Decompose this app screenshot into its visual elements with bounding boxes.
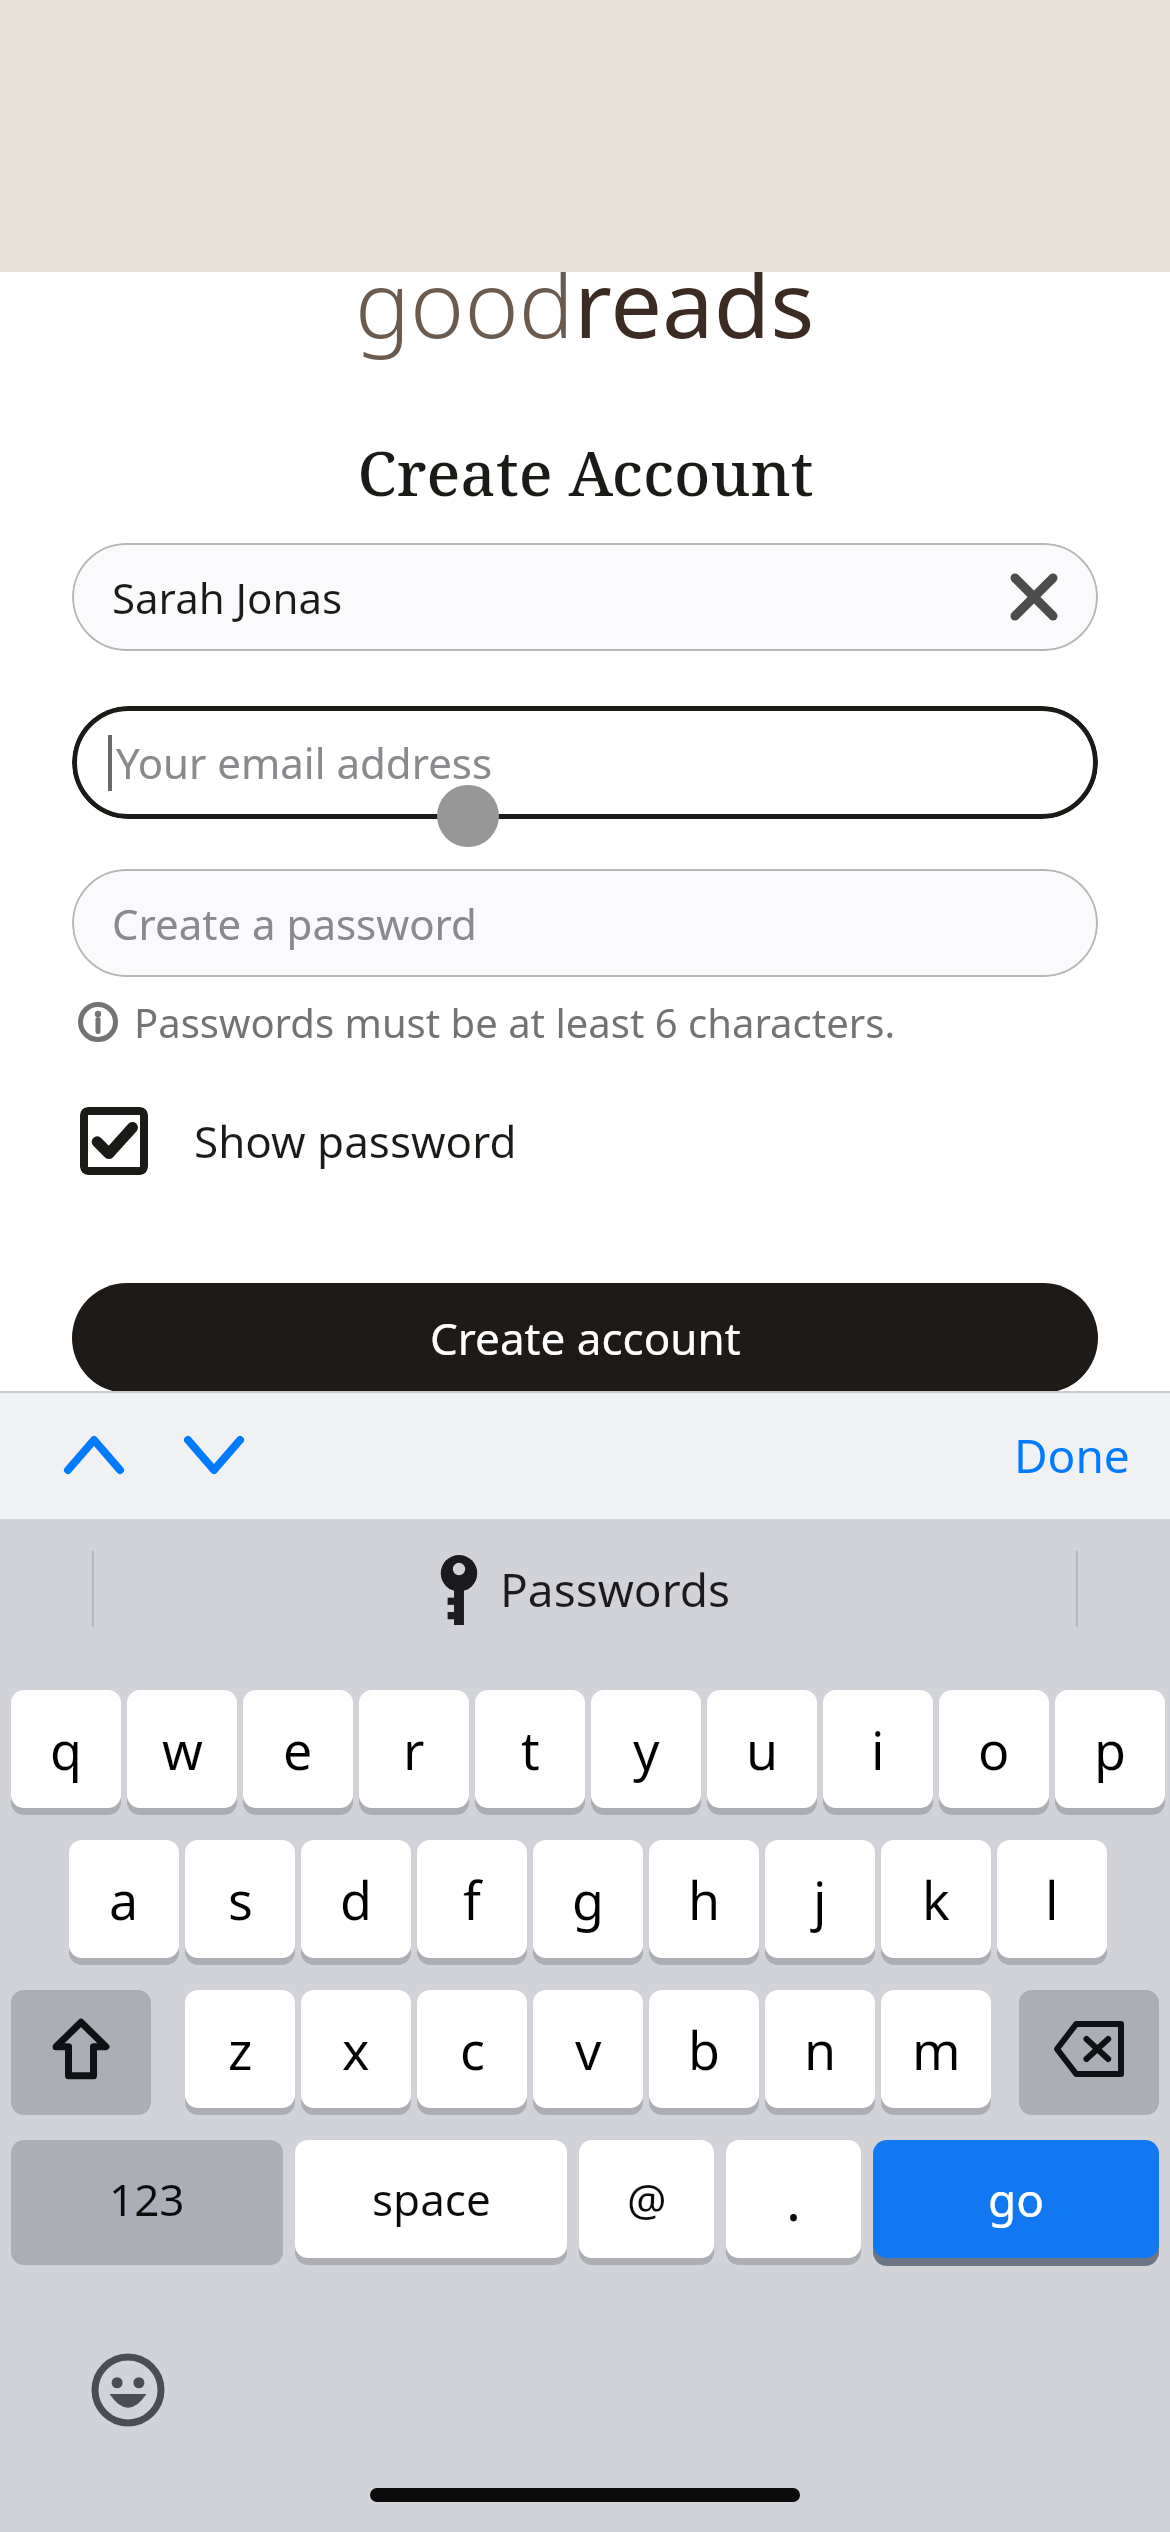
staticText: u xyxy=(746,1714,779,1785)
staticText: k xyxy=(922,1864,950,1935)
button[interactable]: q xyxy=(11,1690,121,1808)
button[interactable]: b xyxy=(649,1990,759,2108)
staticText: r xyxy=(403,1714,425,1785)
staticText: Your email address xyxy=(116,734,493,791)
button[interactable]: y xyxy=(591,1690,701,1808)
button[interactable]: j xyxy=(765,1840,875,1958)
staticText: w xyxy=(162,1714,203,1785)
staticText: good xyxy=(355,240,574,365)
button[interactable]: Show password xyxy=(68,1095,529,1187)
staticText: Create account xyxy=(430,1308,741,1368)
staticText: n xyxy=(804,2014,837,2085)
button[interactable]: go xyxy=(873,2140,1159,2258)
staticText: f xyxy=(463,1864,481,1935)
button[interactable]: z xyxy=(185,1990,295,2108)
button[interactable]: v xyxy=(533,1990,643,2108)
staticText: 123 xyxy=(109,2169,185,2229)
button[interactable]: p xyxy=(1055,1690,1165,1808)
button[interactable]: l xyxy=(997,1840,1107,1958)
button[interactable]: Previous field xyxy=(46,1407,142,1503)
button[interactable]: Backspace xyxy=(1019,1990,1159,2108)
staticText: x xyxy=(342,2014,370,2085)
staticText: m xyxy=(912,2014,961,2085)
staticText: e xyxy=(283,1714,313,1785)
button[interactable]: Passwords xyxy=(440,1553,731,1625)
button[interactable]: s xyxy=(185,1840,295,1958)
button[interactable]: u xyxy=(707,1690,817,1808)
staticText: j xyxy=(813,1864,827,1935)
staticText: Passwords must be at least 6 characters. xyxy=(134,995,896,1049)
staticText: Create Account xyxy=(357,430,814,514)
staticText: y xyxy=(633,1714,660,1785)
staticText: reads xyxy=(574,240,815,365)
staticText: c xyxy=(460,2014,485,2085)
staticText: Sarah Jonas xyxy=(112,569,343,626)
button[interactable]: w xyxy=(127,1690,237,1808)
button[interactable]: h xyxy=(649,1840,759,1958)
staticText: @ xyxy=(627,2169,667,2229)
staticText: d xyxy=(340,1864,372,1935)
button[interactable]: e xyxy=(243,1690,353,1808)
button[interactable]: space xyxy=(295,2140,567,2258)
button[interactable]: Clear text xyxy=(1004,567,1064,627)
button[interactable]: Shift xyxy=(11,1990,151,2108)
button[interactable]: t xyxy=(475,1690,585,1808)
button[interactable]: g xyxy=(533,1840,643,1958)
staticText: q xyxy=(50,1714,82,1785)
staticText: p xyxy=(1094,1714,1126,1785)
button[interactable]: a xyxy=(69,1840,179,1958)
button[interactable]: r xyxy=(359,1690,469,1808)
button[interactable]: n xyxy=(765,1990,875,2108)
button[interactable]: Done xyxy=(974,1407,1170,1503)
button[interactable]: m xyxy=(881,1990,991,2108)
button[interactable]: 123 xyxy=(11,2140,283,2258)
staticText: Show password xyxy=(194,1111,517,1171)
staticText: v xyxy=(575,2014,602,2085)
button[interactable]: i xyxy=(823,1690,933,1808)
staticText: o xyxy=(978,1714,1010,1785)
staticText: g xyxy=(572,1864,604,1935)
button[interactable]: f xyxy=(417,1840,527,1958)
staticText: Create a password xyxy=(112,895,477,952)
staticText: b xyxy=(688,2014,720,2085)
staticText: go xyxy=(988,2168,1045,2231)
staticText: Passwords xyxy=(500,1558,731,1621)
staticText: l xyxy=(1045,1864,1059,1935)
button[interactable]: Next field xyxy=(166,1407,262,1503)
button[interactable]: . xyxy=(726,2140,861,2258)
staticText: a xyxy=(109,1864,139,1935)
button[interactable]: o xyxy=(939,1690,1049,1808)
staticText: h xyxy=(688,1864,721,1935)
staticText: space xyxy=(372,2169,491,2229)
button[interactable]: d xyxy=(301,1840,411,1958)
staticText: z xyxy=(228,2014,253,2085)
button[interactable]: Sarah Jonas xyxy=(72,543,1098,651)
button[interactable]: k xyxy=(881,1840,991,1958)
staticText: Done xyxy=(1014,1424,1130,1487)
staticText: i xyxy=(871,1714,885,1785)
button[interactable]: c xyxy=(417,1990,527,2108)
staticText: t xyxy=(521,1714,540,1785)
button[interactable]: Create a password xyxy=(72,869,1098,977)
staticText: s xyxy=(228,1864,253,1935)
button[interactable]: @ xyxy=(579,2140,714,2258)
staticText: . xyxy=(786,2161,802,2237)
button[interactable]: x xyxy=(301,1990,411,2108)
button[interactable]: Emoji keyboard xyxy=(78,2340,178,2440)
button[interactable]: Create account xyxy=(72,1283,1098,1393)
button[interactable]: Your email address xyxy=(72,706,1098,819)
